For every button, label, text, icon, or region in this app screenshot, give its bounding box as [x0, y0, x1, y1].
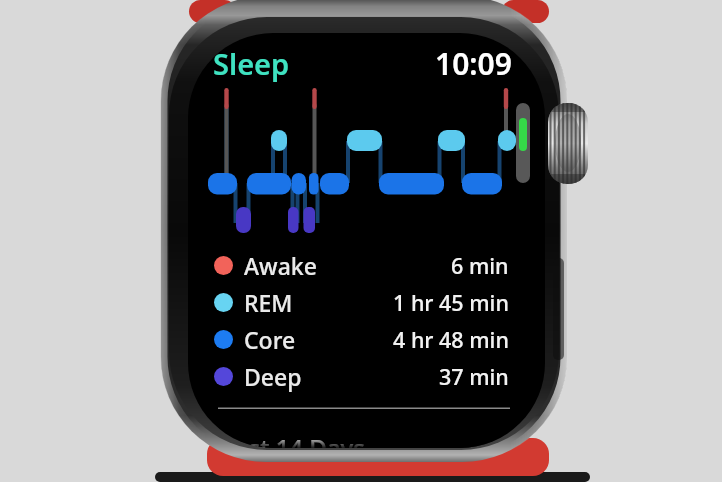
button[interactable]: Deep	[214, 358, 509, 395]
staticText: Deep	[244, 361, 302, 392]
button[interactable]: Last 14 Days	[222, 431, 365, 448]
button[interactable]: Core	[214, 321, 509, 358]
staticText: Core	[244, 324, 296, 355]
staticText: 4 hr 48 min	[393, 325, 509, 354]
staticText: REM	[244, 287, 293, 318]
staticText: Sleep	[213, 44, 290, 83]
staticText: 6 min	[451, 251, 509, 280]
staticText: Awake	[244, 250, 317, 281]
staticText: 1 hr 45 min	[393, 288, 509, 317]
button[interactable]: REM	[214, 284, 509, 321]
staticText: 10:09	[435, 43, 512, 84]
staticText: 37 min	[439, 362, 509, 391]
button[interactable]: Awake	[214, 247, 509, 284]
